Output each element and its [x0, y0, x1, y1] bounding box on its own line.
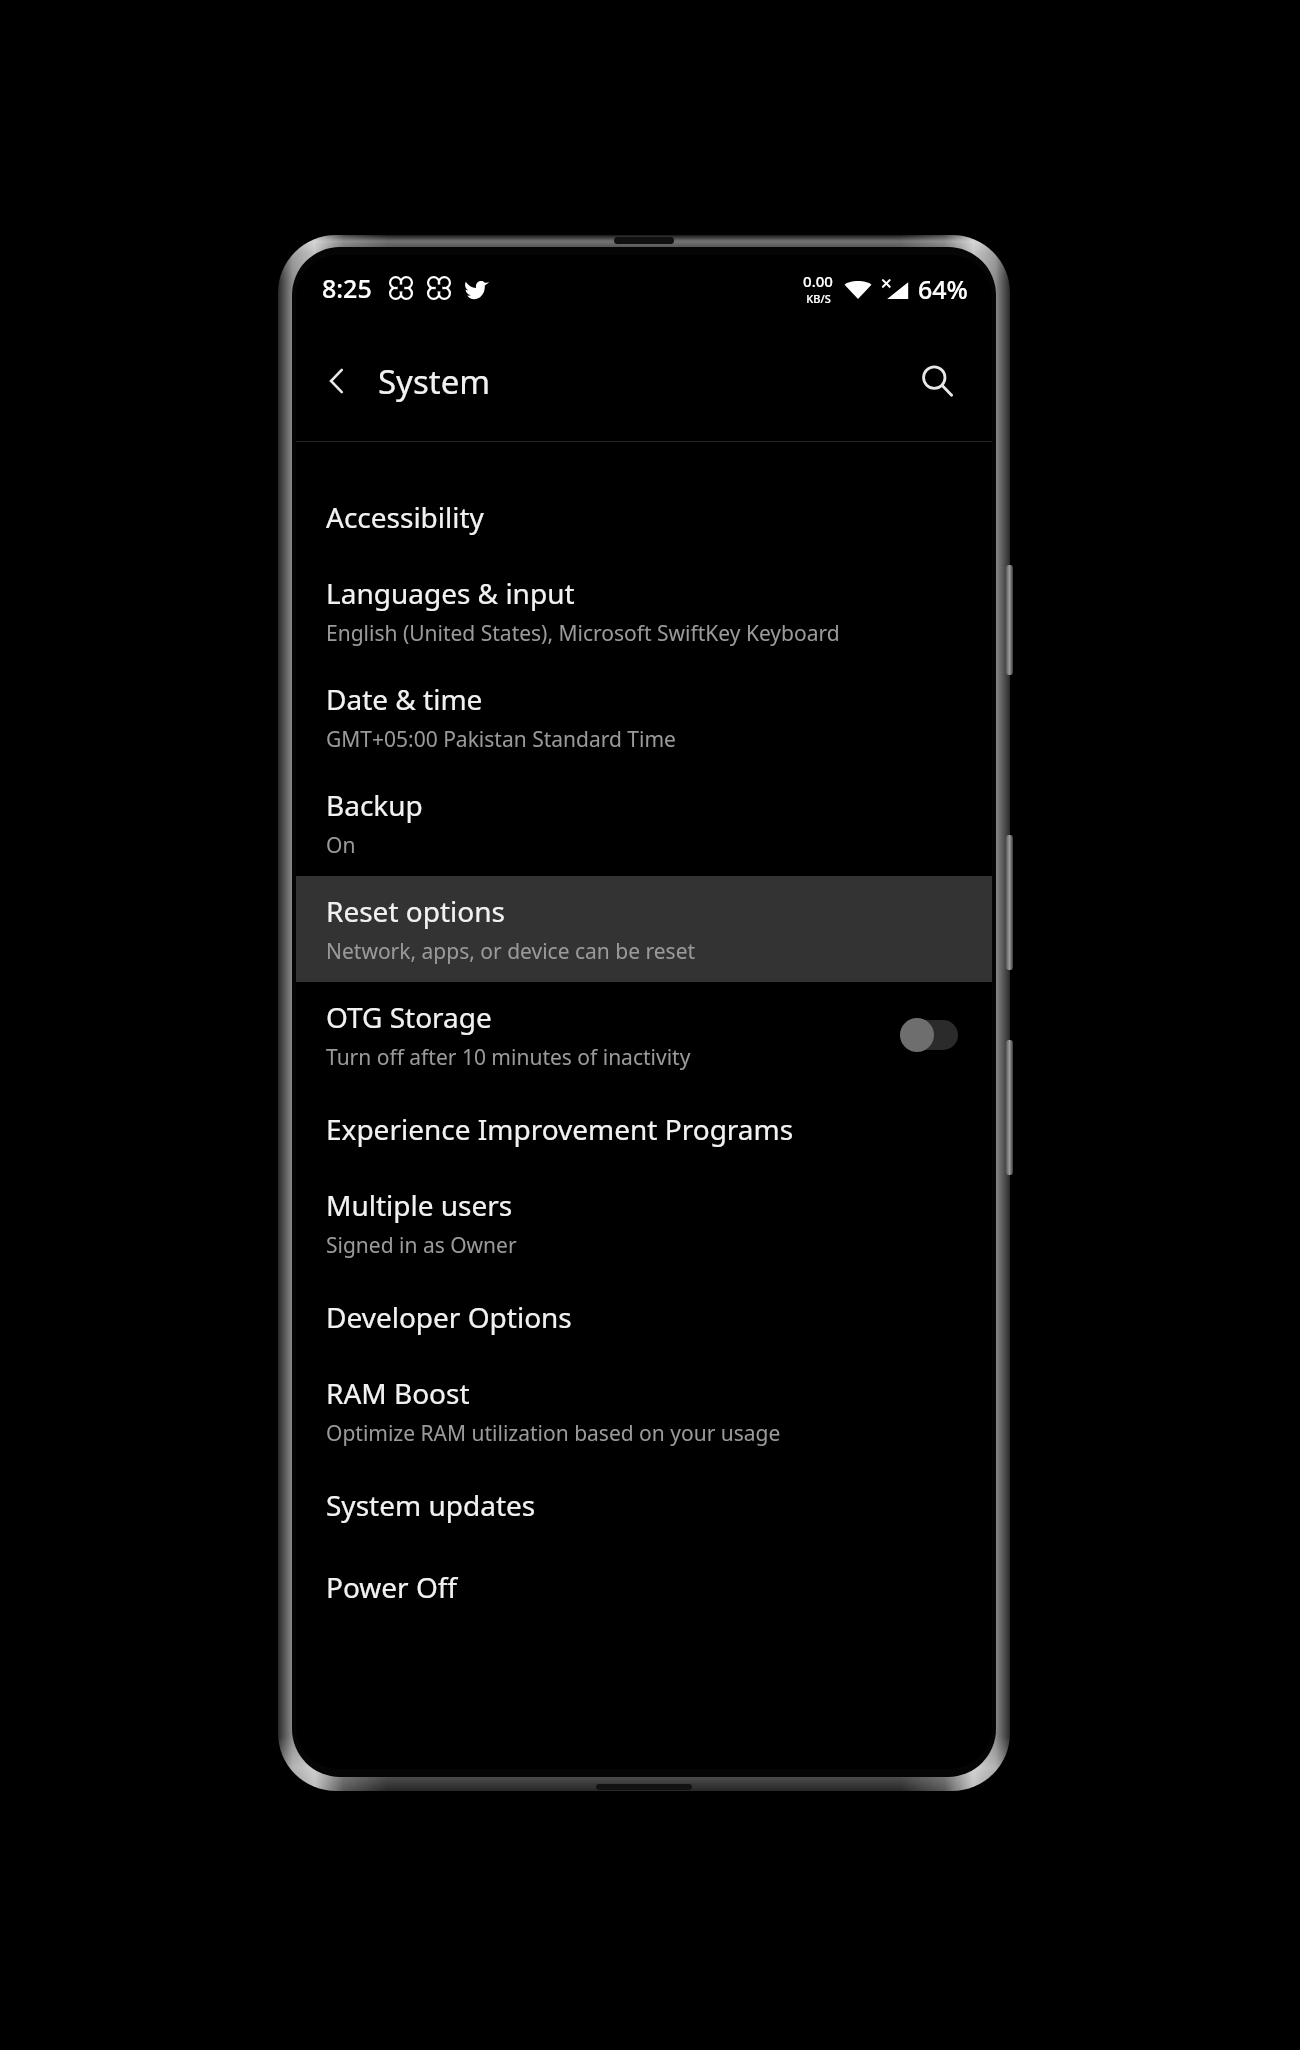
staticText: Accessibility	[326, 498, 484, 536]
staticText: On	[326, 831, 356, 860]
button[interactable]: Reset options	[296, 876, 992, 982]
button[interactable]: Accessibility	[296, 476, 992, 558]
button[interactable]: System updates	[296, 1464, 992, 1546]
staticText: Developer Options	[326, 1298, 572, 1336]
staticText: Experience Improvement Programs	[326, 1110, 794, 1148]
staticText: 0.00	[803, 271, 833, 291]
staticText: OTG Storage	[326, 998, 492, 1036]
button[interactable]: Back	[306, 350, 368, 412]
staticText: System updates	[326, 1486, 536, 1524]
staticText: Multiple users	[326, 1186, 513, 1224]
staticText: Backup	[326, 786, 423, 824]
button[interactable]: Developer Options	[296, 1276, 992, 1358]
staticText: System	[378, 359, 491, 404]
button[interactable]: Experience Improvement Programs	[296, 1088, 992, 1170]
staticText: Languages & input	[326, 574, 575, 612]
staticText: Signed in as Owner	[326, 1231, 517, 1260]
button[interactable]: Search	[906, 350, 968, 412]
button[interactable]: Date & time	[296, 664, 992, 770]
staticText: 8:25	[322, 271, 372, 305]
button[interactable]: OTG Storage	[296, 982, 992, 1088]
staticText: Power Off	[326, 1568, 458, 1606]
staticText: Optimize RAM utilization based on your u…	[326, 1419, 781, 1448]
button[interactable]: Power Off	[296, 1546, 992, 1628]
staticText: GMT+05:00 Pakistan Standard Time	[326, 725, 676, 754]
staticText: 64%	[918, 272, 968, 306]
button[interactable]: RAM Boost	[296, 1358, 992, 1464]
button[interactable]: OTG Storage toggle	[900, 1013, 962, 1057]
staticText: Reset options	[326, 892, 505, 930]
staticText: RAM Boost	[326, 1374, 470, 1412]
staticText: Turn off after 10 minutes of inactivity	[326, 1043, 691, 1072]
button[interactable]: Languages & input	[296, 558, 992, 664]
staticText: KB/S	[806, 291, 831, 306]
staticText: Network, apps, or device can be reset	[326, 937, 696, 966]
staticText: Date & time	[326, 680, 483, 718]
staticText: English (United States), Microsoft Swift…	[326, 619, 840, 648]
button[interactable]: Backup	[296, 770, 992, 876]
button[interactable]: Multiple users	[296, 1170, 992, 1276]
